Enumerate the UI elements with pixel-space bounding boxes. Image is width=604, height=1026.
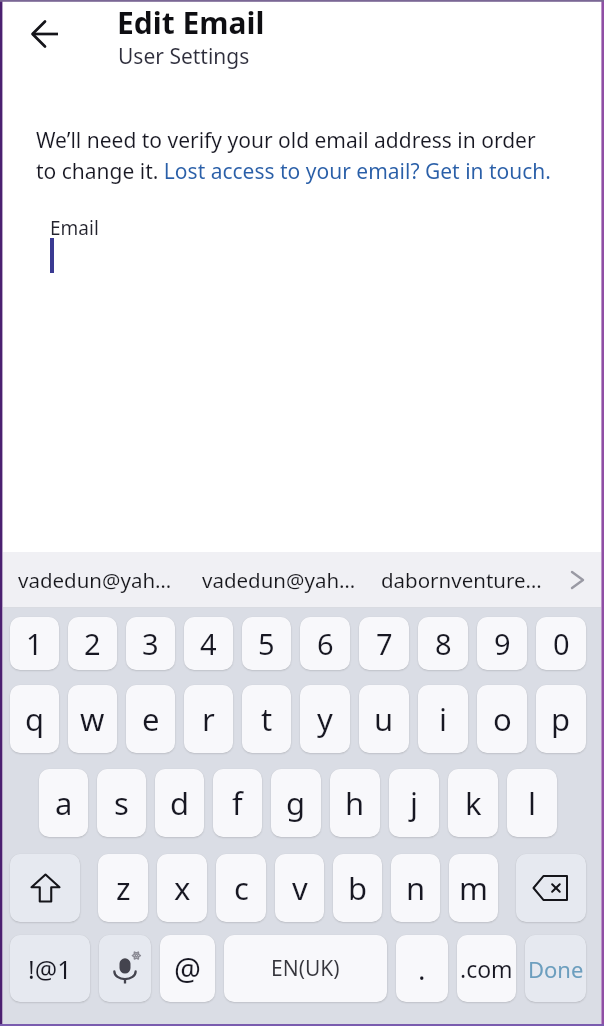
staticText: t (261, 698, 273, 740)
button[interactable]: vadedun@yah… (187, 552, 370, 607)
staticText: a (55, 782, 73, 824)
staticText: g (286, 782, 306, 824)
button[interactable]: x (157, 854, 207, 922)
button[interactable]: 8 (418, 617, 468, 670)
staticText: e (142, 698, 160, 740)
button[interactable]: 4 (184, 617, 233, 670)
staticText: r (202, 698, 215, 740)
staticText: v (292, 867, 308, 909)
staticText: k (465, 782, 482, 824)
staticText: i (439, 698, 447, 740)
button[interactable]: 6 (300, 617, 350, 670)
button[interactable]: w (68, 685, 117, 753)
button[interactable]: 1 (10, 617, 59, 670)
staticText: d (170, 782, 190, 824)
staticText: b (348, 867, 368, 909)
staticText: @ (174, 948, 201, 989)
staticText: 9 (494, 624, 511, 663)
staticText: x (174, 867, 191, 909)
button[interactable]: c (216, 854, 266, 922)
button[interactable]: 7 (359, 617, 409, 670)
staticText: z (116, 867, 131, 909)
staticText: u (374, 698, 394, 740)
staticText: s (114, 782, 129, 824)
staticText: Done (528, 954, 584, 984)
button[interactable]: d (155, 769, 204, 837)
staticText: n (406, 867, 426, 909)
staticText: j (410, 782, 418, 824)
staticText: We’ll need to verify your old email addr… (36, 126, 559, 185)
button[interactable]: EN(UK) (224, 935, 387, 1002)
button[interactable]: e (126, 685, 175, 753)
button[interactable]: Back (20, 9, 70, 59)
staticText: w (80, 698, 105, 740)
staticText: 1 (26, 624, 43, 663)
button[interactable]: . (396, 935, 448, 1002)
button[interactable]: r (184, 685, 233, 753)
button[interactable]: 3 (126, 617, 175, 670)
staticText: 5 (258, 624, 275, 663)
button[interactable]: vadedun@yah… (3, 552, 187, 607)
button[interactable]: .com (457, 935, 516, 1002)
button[interactable]: f (213, 769, 262, 837)
button[interactable]: h (330, 769, 380, 837)
staticText: q (25, 698, 45, 740)
button[interactable]: Done (525, 935, 586, 1002)
button[interactable]: dabornventure… (370, 552, 553, 607)
button[interactable]: 9 (477, 617, 527, 670)
staticText: h (345, 782, 365, 824)
staticText: . (418, 950, 426, 988)
button[interactable]: z (98, 854, 148, 922)
staticText: 2 (84, 624, 101, 663)
staticText: vadedun@yah… (202, 566, 356, 594)
button[interactable]: q (10, 685, 59, 753)
button[interactable]: k (448, 769, 498, 837)
button[interactable]: l (507, 769, 557, 837)
staticText: 3 (142, 624, 159, 663)
button[interactable]: 2 (68, 617, 117, 670)
button[interactable]: u (359, 685, 409, 753)
staticText: y (317, 698, 333, 740)
button[interactable]: b (333, 854, 382, 922)
staticText: 6 (317, 624, 334, 663)
button[interactable]: n (391, 854, 440, 922)
button[interactable]: Voice input (99, 935, 151, 1002)
button[interactable]: y (300, 685, 350, 753)
staticText: 4 (200, 624, 217, 663)
button[interactable]: g (271, 769, 321, 837)
staticText: 7 (376, 624, 393, 663)
button[interactable]: a (39, 769, 88, 837)
button[interactable]: m (449, 854, 498, 922)
staticText: vadedun@yah… (18, 566, 172, 594)
button[interactable]: 5 (242, 617, 291, 670)
button[interactable]: j (389, 769, 439, 837)
button[interactable]: Shift (10, 854, 80, 922)
staticText: .com (460, 953, 513, 984)
button[interactable]: @ (160, 935, 215, 1002)
staticText: !@1 (28, 952, 72, 986)
button[interactable]: o (477, 685, 527, 753)
staticText: EN(UK) (271, 954, 340, 983)
staticText: Edit Email (117, 2, 265, 43)
button[interactable]: !@1 (10, 935, 90, 1002)
button[interactable]: i (418, 685, 468, 753)
staticText: 8 (435, 624, 452, 663)
staticText: c (234, 867, 249, 909)
staticText: p (551, 698, 571, 740)
staticText: o (493, 698, 512, 740)
button[interactable]: s (97, 769, 146, 837)
staticText: dabornventure… (381, 566, 542, 594)
button[interactable]: t (242, 685, 291, 753)
button[interactable]: More suggestions (553, 552, 601, 607)
button[interactable]: Backspace (516, 854, 586, 922)
staticText: m (459, 867, 488, 909)
staticText: User Settings (118, 42, 250, 71)
staticText: l (528, 782, 536, 824)
button[interactable]: v (275, 854, 324, 922)
staticText: Email (50, 215, 99, 241)
button[interactable]: 0 (536, 617, 586, 670)
button[interactable]: p (536, 685, 586, 753)
staticText: f (232, 782, 243, 824)
staticText: 0 (553, 624, 570, 663)
